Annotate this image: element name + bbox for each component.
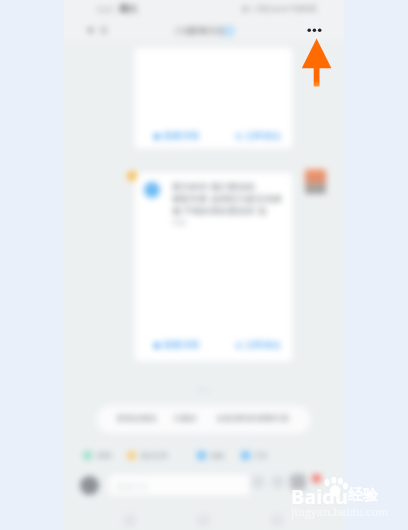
button[interactable]: Profile [80,476,99,495]
button[interactable] [127,451,136,460]
button[interactable]: Tab [260,503,294,530]
button[interactable] [241,451,250,460]
button[interactable] [83,451,92,460]
other: More options [0,0,408,530]
staticText: 详情 [172,218,186,227]
staticText: ☰ [100,26,108,35]
button[interactable]: Avatar [305,169,326,194]
staticText: 大家好 [173,413,197,423]
staticText: jingyan.baidu.com [291,504,389,519]
staticText: 9:41 [97,3,115,15]
staticText: 群聊天室 [190,25,226,36]
staticText: 相册 [210,451,224,460]
button[interactable] [97,406,310,433]
button[interactable]: Back [84,24,96,36]
staticText: 经验 [348,486,378,505]
staticText: Baidu [291,483,348,510]
staticText: 小组 [174,25,192,36]
button[interactable] [135,48,292,148]
button[interactable] [135,173,292,361]
button[interactable]: Menu [98,24,110,36]
staticText: ◎ 立即前往 [235,129,282,141]
staticText: ◉ 查看详情 [153,129,200,141]
staticText: 群里的朋友 [117,413,157,423]
staticText: 因为有你 我们更好的 [172,180,256,192]
button[interactable] [197,451,206,460]
button[interactable]: ◉ 查看详情 [153,129,200,141]
button[interactable]: More [290,474,306,490]
button[interactable]: ◎ 立即前往 [235,129,282,141]
staticText: ◉ 查看详情 [153,338,200,350]
staticText: ◉ ▫ 消息 ▪▫▪ 中国联通 [242,4,317,14]
staticText: ◎ 立即前往 [235,338,282,350]
staticText: 群聊 [97,451,111,460]
staticText: 欢迎来到本群聊天室 [217,413,289,423]
staticText: 精彩到来 这样的大家活动来 [172,192,283,204]
button[interactable]: ◎ 立即前往 [235,338,282,350]
staticText: 周六 [119,3,137,14]
staticText: ◀ [87,26,93,34]
staticText: 成员名单 [140,451,168,460]
button[interactable]: ◉ 查看详情 [153,338,200,350]
staticText: 都 不错的来的更好的 说 [172,204,267,216]
button[interactable]: Emoji [252,476,264,488]
